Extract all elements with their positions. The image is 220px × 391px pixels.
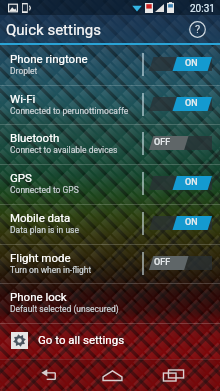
- staticText: Default selected (unsecured): [10, 304, 142, 314]
- button[interactable]: Help: [188, 20, 207, 39]
- button[interactable]: Back: [30, 363, 66, 387]
- staticText: Data plan is in use: [10, 225, 142, 235]
- staticText: Turn on when in-flight: [10, 265, 142, 275]
- staticText: Quick settings: [6, 21, 102, 39]
- staticText: Phone lock: [10, 290, 142, 303]
- staticText: ON: [185, 58, 198, 69]
- button[interactable]: Flight mode: [0, 244, 220, 284]
- staticText: Droplet: [10, 66, 142, 76]
- staticText: GPS: [10, 171, 142, 184]
- button[interactable]: ON: [149, 97, 212, 111]
- button[interactable]: OFF: [149, 256, 212, 270]
- button[interactable]: ON: [149, 57, 212, 71]
- button[interactable]: Wi-Fi: [0, 85, 220, 125]
- button[interactable]: GPS: [0, 164, 220, 204]
- button[interactable]: OFF: [149, 136, 212, 150]
- button[interactable]: Recent apps: [155, 363, 191, 387]
- staticText: OFF: [154, 137, 171, 148]
- button[interactable]: Mobile data: [0, 204, 220, 244]
- staticText: OFF: [154, 257, 171, 268]
- button[interactable]: Phone lock: [0, 283, 220, 323]
- staticText: Connected to GPS: [10, 185, 142, 195]
- staticText: 20:31: [190, 3, 215, 15]
- staticText: ?: [195, 23, 201, 36]
- staticText: Flight mode: [10, 251, 142, 264]
- staticText: Phone ringtone: [10, 52, 142, 65]
- staticText: ON: [185, 217, 198, 228]
- staticText: Wi-Fi: [10, 92, 142, 105]
- staticText: Go to all settings: [38, 333, 125, 346]
- staticText: Connect to available devices: [10, 145, 142, 155]
- staticText: ON: [185, 98, 198, 109]
- staticText: Mobile data: [10, 211, 142, 224]
- staticText: ON: [185, 177, 198, 188]
- button[interactable]: Phone ringtone: [0, 45, 220, 85]
- staticText: Bluetooth: [10, 131, 142, 144]
- button[interactable]: Home: [94, 363, 130, 387]
- button[interactable]: Go to all settings: [0, 323, 220, 357]
- button[interactable]: ON: [149, 176, 212, 190]
- button[interactable]: Bluetooth: [0, 124, 220, 164]
- staticText: Connected to perunottimocaffe: [10, 106, 142, 116]
- button[interactable]: ON: [149, 216, 212, 230]
